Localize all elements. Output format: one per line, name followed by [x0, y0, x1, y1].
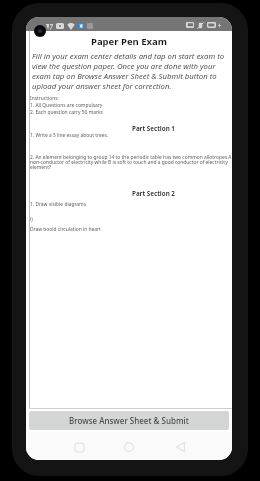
staticText: Fill in your exam center details and tap…: [32, 51, 232, 91]
staticText: Part Section 2: [132, 189, 175, 198]
staticText: Instructions:: [30, 95, 59, 102]
staticText: 1. Draw visible diagrams: [30, 201, 86, 208]
staticText: Part Section 1: [132, 124, 175, 133]
button[interactable]: Recents: [70, 438, 88, 456]
button[interactable]: Back: [171, 438, 189, 456]
button[interactable]: Home: [120, 438, 138, 456]
staticText: Draw boold circulation in heart: [30, 226, 101, 233]
staticText: 1. All Questions are compulsary: [30, 102, 103, 109]
button[interactable]: Browse Answer Sheet & Submit: [29, 411, 229, 430]
staticText: Paper Pen Exam: [30, 35, 228, 48]
staticText: 2. An element belonging to group 14 to t…: [30, 154, 232, 171]
staticText: 1. Write a 5 line essay about trees.: [30, 132, 109, 139]
staticText: 2. Each question carry 50 marks: [30, 109, 103, 116]
staticText: Browse Answer Sheet & Submit: [69, 415, 189, 426]
staticText: i): [30, 216, 33, 223]
